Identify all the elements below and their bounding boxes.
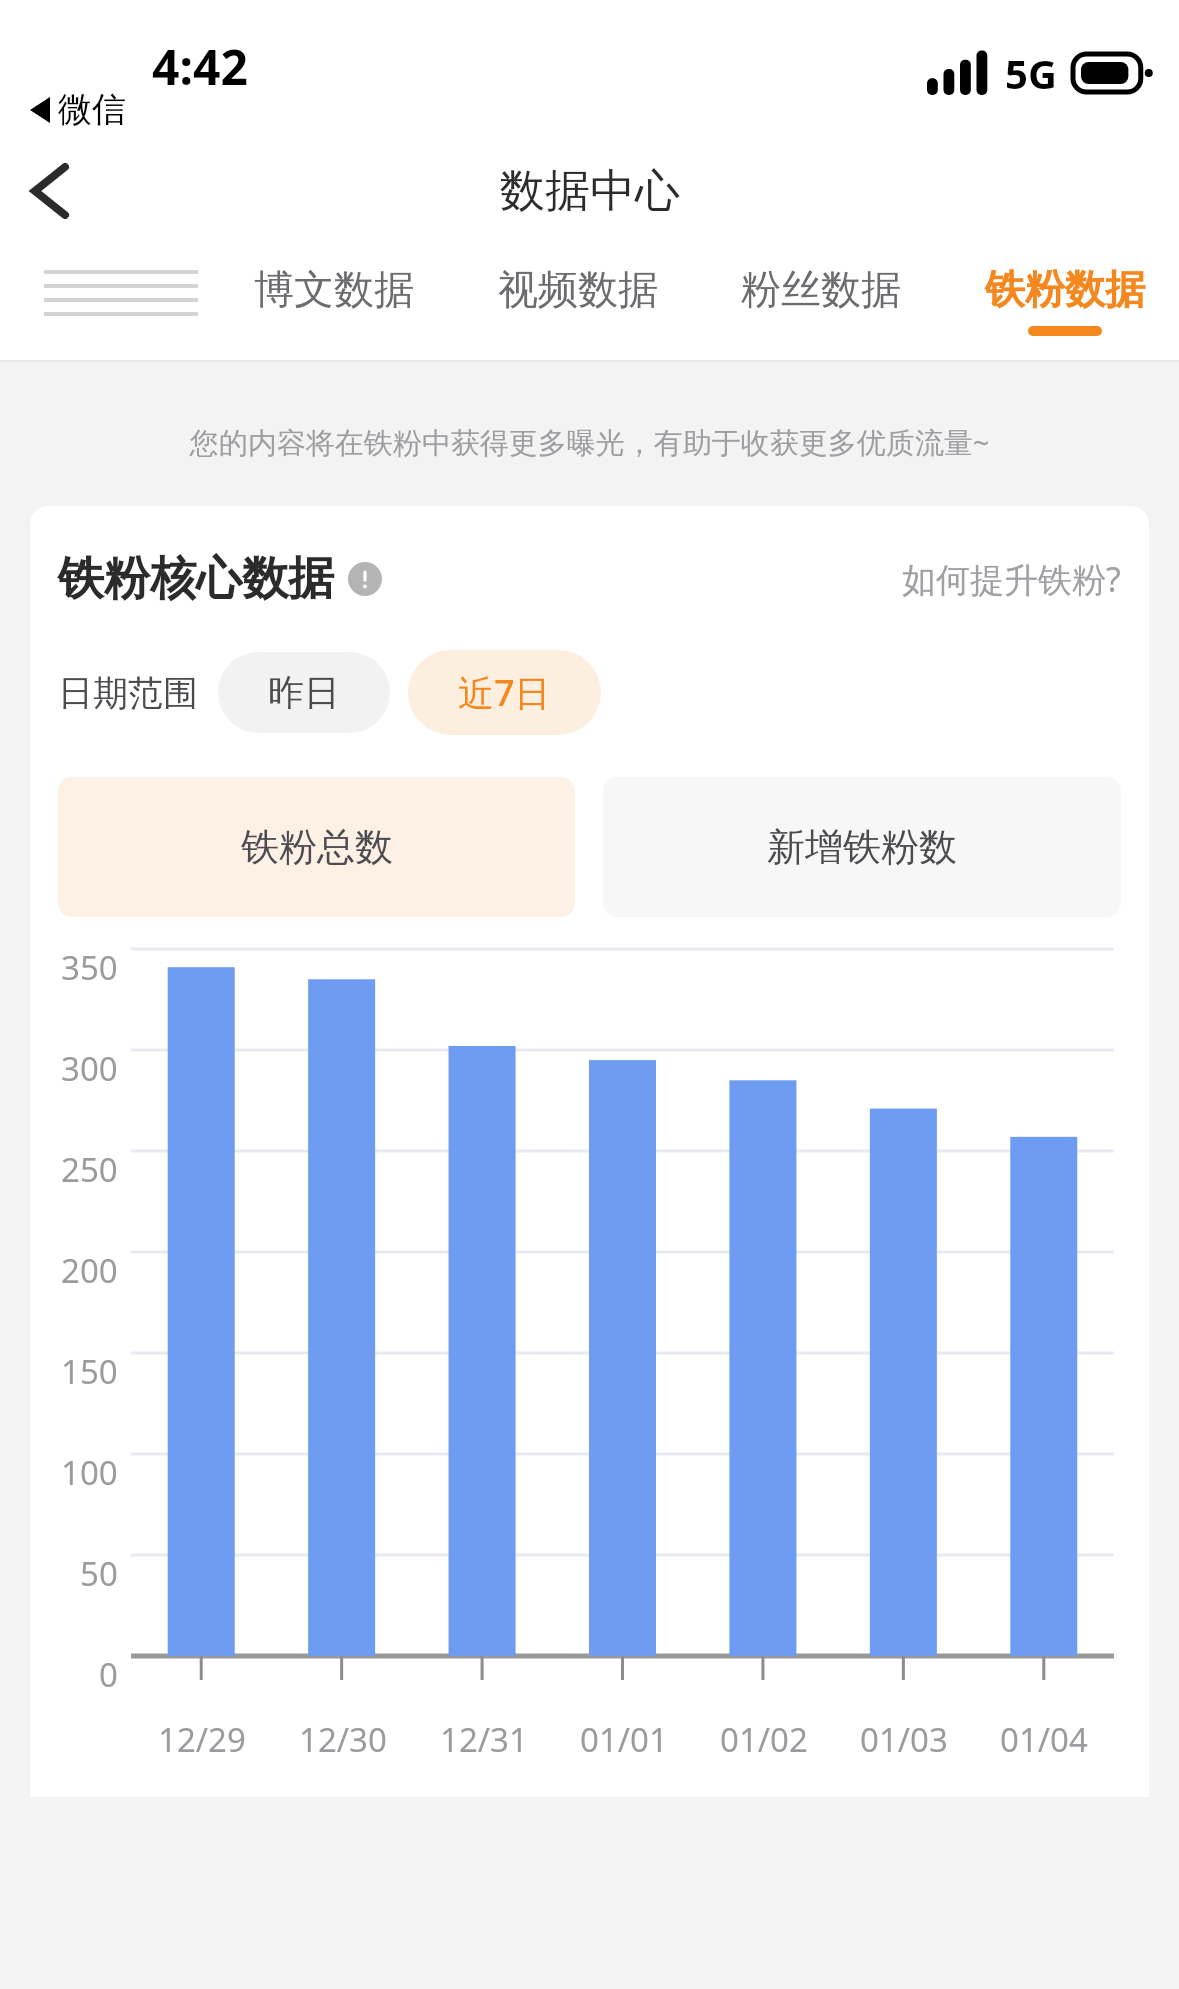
button[interactable]: 铁粉数据 — [979, 250, 1151, 360]
staticText: 100 — [61, 1450, 118, 1495]
button[interactable]: Back — [0, 141, 100, 241]
staticText: 150 — [61, 1349, 118, 1394]
staticText: 您的内容将在铁粉中获得更多曝光，有助于收获更多优质流量~ — [0, 422, 1179, 462]
staticText: 铁粉核心数据 — [58, 550, 334, 608]
staticText: 铁粉总数 — [241, 823, 393, 871]
button[interactable]: 粉丝数据 — [735, 250, 907, 360]
button[interactable]: 铁粉核心数据 — [58, 550, 382, 608]
staticText: 350 — [61, 945, 118, 990]
staticText: 200 — [61, 1248, 118, 1293]
button[interactable]: 如何提升铁粉? — [902, 556, 1121, 602]
staticText: 01/01 — [580, 1717, 668, 1762]
button[interactable]: 昨日 — [218, 652, 390, 733]
staticText: 昨日 — [268, 670, 340, 715]
staticText: 50 — [80, 1551, 118, 1596]
staticText: 12/30 — [299, 1717, 387, 1762]
staticText: 0 — [99, 1652, 118, 1697]
staticText: 01/02 — [720, 1717, 808, 1762]
button[interactable]: 博文数据 — [248, 250, 420, 360]
staticText: 日期范围 — [58, 671, 198, 715]
staticText: 300 — [61, 1046, 118, 1091]
button[interactable]: 新增铁粉数 — [603, 777, 1121, 917]
staticText: 数据中心 — [500, 163, 680, 220]
staticText: 近7日 — [458, 668, 551, 717]
staticText: 微信 — [58, 88, 126, 131]
button[interactable]: 视频数据 — [492, 250, 664, 360]
button[interactable]: 近7日 — [408, 650, 601, 735]
staticText: 01/03 — [860, 1717, 948, 1762]
staticText: 博文数据 — [254, 264, 414, 314]
staticText: 12/31 — [440, 1717, 528, 1762]
staticText: 12/29 — [158, 1717, 246, 1762]
staticText: 01/04 — [1000, 1717, 1088, 1762]
staticText: 新增铁粉数 — [767, 823, 957, 871]
staticText: 4:42 — [152, 34, 248, 99]
button[interactable]: 铁粉总数 — [58, 777, 575, 917]
staticText: 粉丝数据 — [741, 264, 901, 314]
staticText: 250 — [61, 1147, 118, 1192]
staticText: 5G — [1005, 46, 1057, 100]
staticText: 铁粉数据 — [985, 264, 1145, 314]
staticText: 视频数据 — [498, 264, 658, 314]
